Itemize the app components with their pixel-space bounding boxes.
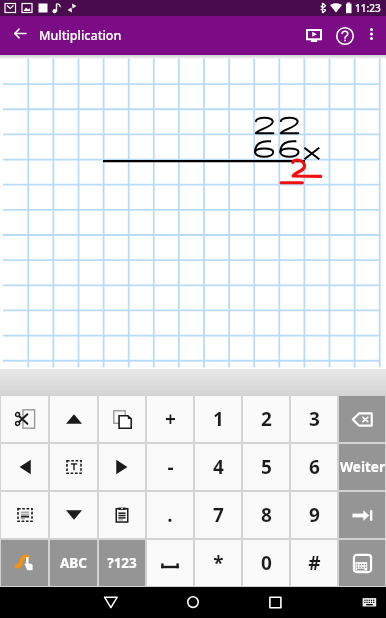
button[interactable]: 4 (195, 444, 241, 490)
button[interactable]: - (147, 444, 193, 490)
staticText: # (308, 550, 321, 576)
button[interactable]: 2 (243, 396, 289, 442)
staticText: 8 (261, 502, 272, 528)
staticText: 9 (309, 502, 320, 528)
button[interactable]: Weiter (339, 444, 385, 490)
button[interactable]: Space (147, 540, 193, 586)
button[interactable]: Back (88, 587, 133, 618)
button[interactable]: Recent apps (252, 587, 297, 618)
button[interactable]: 5 (243, 444, 289, 490)
staticText: 2 (261, 406, 272, 432)
button[interactable]: Move right (99, 444, 145, 490)
staticText: 3 (309, 406, 320, 432)
staticText: 7 (213, 502, 224, 528)
button[interactable]: Hide keyboard (339, 540, 385, 586)
button[interactable]: Paste (99, 492, 145, 538)
button[interactable]: Move left (1, 444, 48, 490)
staticText: 5 (261, 454, 272, 480)
staticText: 1 (213, 406, 224, 432)
button[interactable]: Tab (339, 492, 385, 538)
button[interactable]: . (147, 492, 193, 538)
staticText: 11:23 (355, 1, 381, 15)
button[interactable]: ABC (50, 540, 97, 586)
button[interactable]: ?123 (99, 540, 145, 586)
button[interactable]: More options (358, 16, 386, 55)
button[interactable]: + (147, 396, 193, 442)
staticText: - (167, 454, 174, 480)
staticText: Weiter (340, 458, 385, 476)
button[interactable]: Gesture input (1, 540, 48, 586)
button[interactable]: Copy (99, 396, 145, 442)
button[interactable]: Show keyboard (356, 587, 386, 618)
button[interactable]: 3 (291, 396, 337, 442)
button[interactable]: Navigate up (0, 16, 41, 55)
button[interactable]: 7 (195, 492, 241, 538)
button[interactable]: Select text (50, 444, 97, 490)
button[interactable]: 6 (291, 444, 337, 490)
button[interactable]: * (195, 540, 241, 586)
button[interactable]: Home (170, 587, 215, 618)
staticText: . (167, 502, 173, 528)
button[interactable]: # (291, 540, 337, 586)
button[interactable]: Delete (339, 396, 385, 442)
button[interactable]: 8 (243, 492, 289, 538)
staticText: * (213, 550, 224, 576)
staticText: Multiplication (39, 27, 122, 44)
button[interactable]: Slideshow (294, 16, 334, 55)
button[interactable]: Select all (1, 492, 48, 538)
button[interactable]: 9 (291, 492, 337, 538)
staticText: 0 (261, 550, 272, 576)
staticText: ABC (60, 554, 87, 572)
staticText: 6 (309, 454, 320, 480)
staticText: 4 (213, 454, 224, 480)
button[interactable]: Move up (50, 396, 97, 442)
staticText: ?123 (107, 554, 137, 572)
staticText: + (165, 406, 176, 432)
button[interactable]: Help (334, 16, 356, 55)
button[interactable]: Move down (50, 492, 97, 538)
button[interactable]: Cut (1, 396, 48, 442)
button[interactable]: 1 (195, 396, 241, 442)
button[interactable]: 0 (243, 540, 289, 586)
